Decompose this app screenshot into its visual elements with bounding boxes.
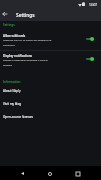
button[interactable]: Home: [43, 167, 56, 180]
staticText: Visit my blog: [3, 102, 22, 106]
staticText: Settings: [16, 12, 35, 19]
staticText: Display notifications: [3, 54, 33, 58]
staticText: Allow wildcards: [3, 34, 26, 38]
button[interactable]: Visit my blog: [0, 97, 101, 110]
button[interactable]: Allow wildcards: [0, 33, 101, 50]
button[interactable]: Navigate up: [0, 7, 11, 20]
staticText: 14:07: [89, 3, 98, 7]
staticText: Information: [3, 80, 21, 84]
staticText: Display a notification whenever a song i…: [3, 58, 48, 66]
button[interactable]: Display notifications: [0, 53, 101, 70]
staticText: Open-source licenses: [3, 115, 33, 119]
staticText: Settings: [3, 23, 15, 27]
button[interactable]: Open-source licenses: [0, 110, 101, 123]
button[interactable]: About Skiply: [0, 84, 101, 97]
staticText: About Skiply: [3, 89, 21, 93]
button[interactable]: Recent apps: [71, 167, 84, 180]
staticText: Allow the use of * to match any sequence…: [3, 38, 52, 46]
button[interactable]: Back: [16, 167, 29, 180]
